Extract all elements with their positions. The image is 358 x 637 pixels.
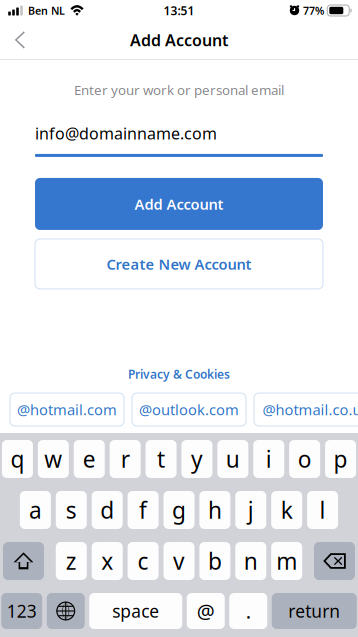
staticText: h xyxy=(208,495,222,525)
staticText: t xyxy=(157,444,165,474)
button[interactable]: @ xyxy=(187,593,225,629)
staticText: i xyxy=(266,444,272,474)
button[interactable]: @hotmail.com xyxy=(10,393,124,426)
button[interactable]: x xyxy=(92,542,123,580)
button[interactable]: @outlook.com xyxy=(132,393,246,426)
button[interactable]: f xyxy=(128,491,159,529)
button[interactable]: Add Account xyxy=(35,178,323,230)
staticText: x xyxy=(101,546,113,576)
button[interactable]: h xyxy=(199,491,230,529)
staticText: d xyxy=(100,495,114,525)
button[interactable]: n xyxy=(235,542,266,580)
staticText: Add Account xyxy=(134,194,223,214)
button[interactable]: Back xyxy=(0,21,38,58)
staticText: @ xyxy=(197,598,215,624)
button[interactable]: y xyxy=(181,440,212,478)
button[interactable]: t xyxy=(145,440,176,478)
button[interactable]: g xyxy=(163,491,194,529)
staticText: Enter your work or personal email xyxy=(74,81,284,99)
button[interactable]: l xyxy=(307,491,338,529)
staticText: r xyxy=(121,444,130,474)
staticText: space xyxy=(112,599,159,622)
button[interactable]: m xyxy=(271,542,302,580)
staticText: z xyxy=(66,546,77,576)
staticText: c xyxy=(138,546,149,576)
staticText: return xyxy=(288,599,340,622)
staticText: e xyxy=(83,444,96,474)
button[interactable]: i xyxy=(253,440,284,478)
button[interactable]: p xyxy=(325,440,356,478)
staticText: w xyxy=(44,444,62,474)
staticText: Ben NL xyxy=(28,3,65,18)
staticText: . xyxy=(246,598,251,624)
staticText: @hotmail.com xyxy=(17,400,117,419)
button[interactable]: Change keyboard xyxy=(47,593,85,629)
button[interactable]: a xyxy=(20,491,51,529)
button[interactable]: Delete xyxy=(314,542,355,580)
button[interactable]: z xyxy=(56,542,87,580)
staticText: a xyxy=(29,495,42,525)
staticText: n xyxy=(244,546,258,576)
staticText: Add Account xyxy=(130,29,228,51)
button[interactable]: c xyxy=(128,542,159,580)
staticText: l xyxy=(320,495,326,525)
staticText: @outlook.com xyxy=(139,400,239,419)
button[interactable]: s xyxy=(56,491,87,529)
staticText: j xyxy=(248,495,254,525)
button[interactable]: j xyxy=(235,491,266,529)
button[interactable]: e xyxy=(74,440,105,478)
staticText: y xyxy=(191,444,203,474)
staticText: 123 xyxy=(7,599,37,622)
staticText: p xyxy=(333,444,347,474)
button[interactable]: 123 xyxy=(1,593,42,629)
button[interactable]: o xyxy=(289,440,320,478)
button[interactable]: Privacy & Cookies xyxy=(128,366,230,389)
staticText: 13:51 xyxy=(163,2,194,18)
button[interactable]: u xyxy=(217,440,248,478)
staticText: 77% xyxy=(303,3,324,18)
staticText: g xyxy=(172,495,186,525)
button[interactable]: @hotmail.co.uk xyxy=(254,393,358,426)
button[interactable]: k xyxy=(271,491,302,529)
button[interactable]: v xyxy=(163,542,194,580)
staticText: f xyxy=(139,495,147,525)
button[interactable]: q xyxy=(2,440,33,478)
button[interactable]: b xyxy=(199,542,230,580)
button[interactable]: Create New Account xyxy=(35,239,323,289)
button[interactable]: Shift xyxy=(3,542,44,580)
button[interactable]: d xyxy=(92,491,123,529)
staticText: k xyxy=(281,495,293,525)
button[interactable]: r xyxy=(110,440,141,478)
staticText: Privacy & Cookies xyxy=(128,366,230,382)
staticText: u xyxy=(226,444,240,474)
button[interactable]: return xyxy=(272,593,357,629)
staticText: @hotmail.co.uk xyxy=(262,400,358,419)
staticText: q xyxy=(10,444,24,474)
button[interactable]: w xyxy=(38,440,69,478)
staticText: info@domainname.com xyxy=(35,123,217,144)
button[interactable]: . xyxy=(229,593,267,629)
staticText: s xyxy=(66,495,77,525)
staticText: Create New Account xyxy=(106,254,251,274)
staticText: b xyxy=(208,546,222,576)
staticText: m xyxy=(276,546,297,576)
staticText: o xyxy=(298,444,312,474)
button[interactable]: space xyxy=(89,593,182,629)
staticText: v xyxy=(173,546,185,576)
